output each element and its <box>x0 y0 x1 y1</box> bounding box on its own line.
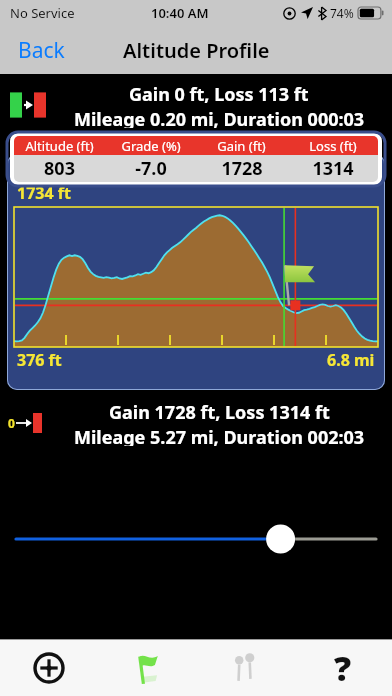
staticText: 1734 ft <box>17 182 71 204</box>
button[interactable]: Altitude (ft) <box>14 136 378 182</box>
staticText: Back <box>18 36 65 65</box>
button[interactable] <box>16 517 376 561</box>
button[interactable]: Back <box>0 26 83 74</box>
staticText: Grade (%) <box>121 137 181 155</box>
staticText: 376 ft <box>17 349 62 371</box>
staticText: 1728 <box>221 156 263 181</box>
button[interactable]: Pins <box>196 640 294 696</box>
button[interactable]: Target <box>0 640 98 696</box>
button[interactable]: Help <box>294 640 392 696</box>
staticText: Altitude Profile <box>123 37 270 64</box>
staticText: Gain 1728 ft, Loss 1314 ft <box>109 400 330 425</box>
staticText: ? <box>334 645 352 691</box>
staticText: -7.0 <box>135 156 167 181</box>
staticText: 803 <box>44 156 75 181</box>
staticText: Mileage 0.20 mi, Duration 000:03 <box>74 107 365 128</box>
staticText: 74% <box>330 5 354 21</box>
staticText: Gain 0 ft, Loss 113 ft <box>129 82 309 107</box>
staticText: 10:40 AM <box>151 4 209 22</box>
staticText: 1314 <box>312 156 354 181</box>
staticText: No Service <box>10 4 75 22</box>
button[interactable]: Flag <box>98 640 196 696</box>
staticText: 0 <box>8 415 15 431</box>
staticText: Mileage 5.27 mi, Duration 002:03 <box>74 425 365 446</box>
staticText: 6.8 mi <box>327 349 375 371</box>
staticText: Gain (ft) <box>217 137 266 155</box>
staticText: Altitude (ft) <box>25 137 94 155</box>
staticText: Loss (ft) <box>309 137 357 155</box>
